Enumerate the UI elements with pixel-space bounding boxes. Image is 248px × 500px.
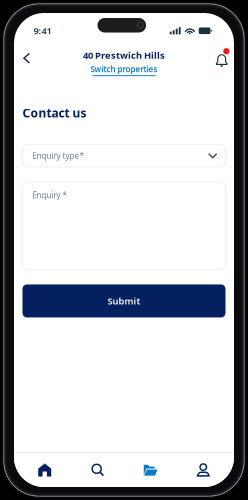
staticText: Contact us xyxy=(22,105,86,121)
button[interactable]: Switch properties xyxy=(90,64,157,76)
button[interactable]: Account xyxy=(177,453,230,487)
staticText: Submit xyxy=(107,295,140,307)
staticText: 40 Prestwich Hills xyxy=(83,49,165,61)
button[interactable]: Notifications xyxy=(206,48,228,76)
staticText: 9:41 xyxy=(33,25,51,37)
staticText: Switch properties xyxy=(90,64,157,74)
button[interactable]: Search xyxy=(71,453,124,487)
button[interactable]: Enquiry type* xyxy=(22,144,225,167)
staticText: Enquiry * xyxy=(32,190,66,200)
button[interactable]: Back xyxy=(19,48,45,76)
button[interactable]: Documents xyxy=(124,453,177,487)
button[interactable]: Submit xyxy=(22,284,225,317)
staticText: Enquiry type* xyxy=(32,150,83,161)
button[interactable]: Home xyxy=(18,453,71,487)
button[interactable]: Enquiry * xyxy=(22,182,225,270)
